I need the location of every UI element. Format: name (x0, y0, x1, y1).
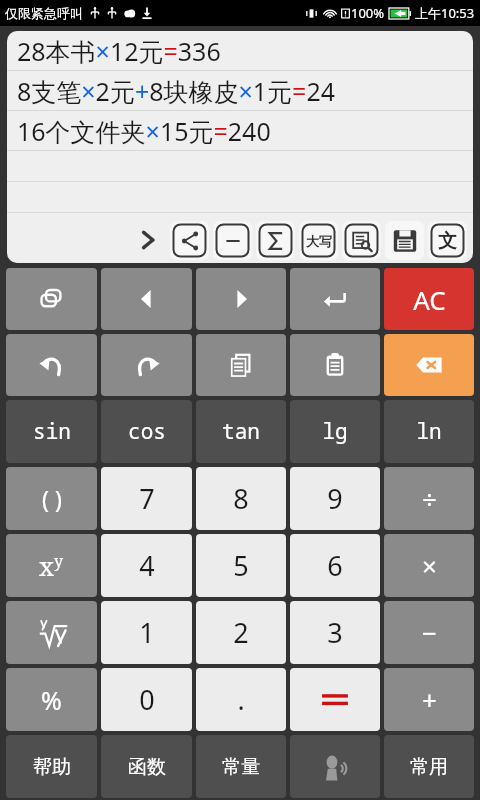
staticText: 8支笔×2元+8块橡皮×1元=24 (17, 74, 336, 108)
button[interactable]: 9 (290, 467, 380, 530)
staticText: AC (413, 282, 446, 317)
button[interactable]: lg (290, 400, 380, 463)
button[interactable]: Fraction (213, 221, 252, 260)
staticText: 28本书×12元=336 (17, 34, 221, 68)
button[interactable]: Uppercase (299, 221, 338, 260)
staticText: ln (416, 417, 442, 446)
staticText: 仅限紧急呼叫 (5, 5, 83, 21)
staticText: 6 (327, 547, 343, 584)
button[interactable]: 8 (196, 467, 286, 530)
button[interactable]: tan (196, 400, 286, 463)
staticText: × (422, 548, 437, 583)
button[interactable]: 4 (101, 534, 192, 597)
staticText: 大写 (306, 233, 332, 249)
button[interactable]: 3 (290, 601, 380, 664)
staticText: 1 (139, 614, 155, 651)
button[interactable]: y-th root of x (6, 601, 97, 664)
button[interactable]: ( ) (6, 467, 97, 530)
button[interactable]: 常量 (196, 735, 286, 798)
button[interactable]: + (384, 668, 474, 731)
button[interactable]: 帮助 (6, 735, 97, 798)
button[interactable]: Speak (290, 735, 380, 798)
staticText: ÷ (422, 481, 437, 516)
staticText: 常用 (410, 755, 448, 779)
button[interactable]: 5 (196, 534, 286, 597)
staticText: 5 (233, 547, 249, 584)
button[interactable]: sin (6, 400, 97, 463)
button[interactable]: Windows (6, 268, 97, 330)
button[interactable]: Expand (128, 220, 168, 260)
staticText: % (41, 683, 62, 717)
staticText: 2 (233, 614, 249, 651)
button[interactable]: x to the power y (6, 534, 97, 597)
staticText: + (422, 682, 437, 717)
staticText: ( ) (42, 483, 62, 514)
staticText: 文 (438, 229, 457, 253)
button[interactable]: . (196, 668, 286, 731)
button[interactable]: Sum (256, 221, 295, 260)
button[interactable]: ln (384, 400, 474, 463)
button[interactable]: Backspace (384, 334, 474, 396)
staticText: . (237, 681, 245, 718)
staticText: 100% (351, 4, 385, 22)
button[interactable]: 常用 (384, 735, 474, 798)
button[interactable]: Text mode (428, 221, 467, 260)
button[interactable]: Enter (290, 268, 380, 330)
button[interactable]: Move left (101, 268, 192, 330)
button[interactable]: AC (384, 268, 474, 330)
staticText: 8 (233, 480, 249, 517)
button[interactable]: Redo (101, 334, 192, 396)
staticText: 9 (327, 480, 343, 517)
staticText: 7 (139, 480, 155, 517)
button[interactable]: ÷ (384, 467, 474, 530)
button[interactable]: Copy (196, 334, 286, 396)
staticText: 0 (139, 681, 155, 718)
staticText: tan (222, 417, 260, 446)
staticText: 4 (139, 547, 155, 584)
button[interactable]: 1 (101, 601, 192, 664)
staticText: 常量 (222, 755, 260, 779)
staticText: 函数 (128, 755, 166, 779)
button[interactable]: 0 (101, 668, 192, 731)
button[interactable]: Equals (290, 668, 380, 731)
button[interactable]: 7 (101, 467, 192, 530)
button[interactable]: × (384, 534, 474, 597)
staticText: xy (39, 548, 64, 583)
staticText: 帮助 (33, 755, 71, 779)
staticText: lg (322, 417, 348, 446)
button[interactable]: 函数 (101, 735, 192, 798)
button[interactable]: Share (170, 221, 209, 260)
button[interactable]: − (384, 601, 474, 664)
button[interactable]: cos (101, 400, 192, 463)
staticText: 上午10:53 (415, 4, 475, 22)
button[interactable]: Move right (196, 268, 286, 330)
button[interactable]: Save (385, 221, 424, 260)
button[interactable]: 2 (196, 601, 286, 664)
button[interactable]: 6 (290, 534, 380, 597)
button[interactable]: Paste (290, 334, 380, 396)
staticText: 3 (327, 614, 343, 651)
staticText: − (422, 615, 437, 650)
button[interactable]: % (6, 668, 97, 731)
staticText: sin (33, 417, 71, 446)
button[interactable]: Undo (6, 334, 97, 396)
button[interactable]: Search (342, 221, 381, 260)
staticText: 16个文件夹×15元=240 (17, 114, 271, 148)
staticText: cos (128, 417, 166, 446)
